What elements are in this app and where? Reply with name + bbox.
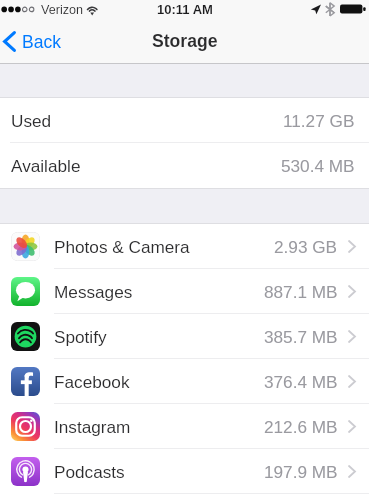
staticText: 212.6 MB bbox=[264, 417, 338, 436]
staticText: Photos & Camera bbox=[54, 237, 190, 256]
staticText: Podcasts bbox=[54, 462, 125, 481]
button[interactable]: Used bbox=[0, 98, 369, 143]
staticText: 887.1 MB bbox=[264, 282, 338, 301]
button[interactable]: Facebook bbox=[0, 359, 369, 404]
button[interactable]: Messages bbox=[0, 269, 369, 314]
button[interactable]: Available bbox=[0, 143, 369, 188]
staticText: 2.93 GB bbox=[274, 237, 338, 256]
button[interactable]: Podcasts bbox=[0, 449, 369, 494]
staticText: Used bbox=[11, 111, 52, 130]
staticText: 197.9 MB bbox=[264, 462, 338, 481]
staticText: 385.7 MB bbox=[264, 327, 338, 346]
staticText: Spotify bbox=[54, 327, 107, 346]
staticText: Storage bbox=[152, 31, 218, 51]
button[interactable]: Instagram bbox=[0, 404, 369, 449]
staticText: Facebook bbox=[54, 372, 130, 391]
button[interactable]: Spotify bbox=[0, 314, 369, 359]
staticText: 11.27 GB bbox=[283, 111, 355, 130]
staticText: 10:11 AM bbox=[157, 2, 213, 17]
staticText: 376.4 MB bbox=[264, 372, 338, 391]
staticText: 530.4 MB bbox=[281, 156, 355, 175]
staticText: Available bbox=[11, 156, 81, 175]
staticText: Messages bbox=[54, 282, 133, 301]
staticText: Verizon bbox=[41, 3, 84, 17]
button[interactable]: Photos & Camera bbox=[0, 224, 369, 269]
staticText: Instagram bbox=[54, 417, 131, 436]
button[interactable]: Back bbox=[0, 27, 69, 56]
staticText: Back bbox=[22, 32, 61, 52]
